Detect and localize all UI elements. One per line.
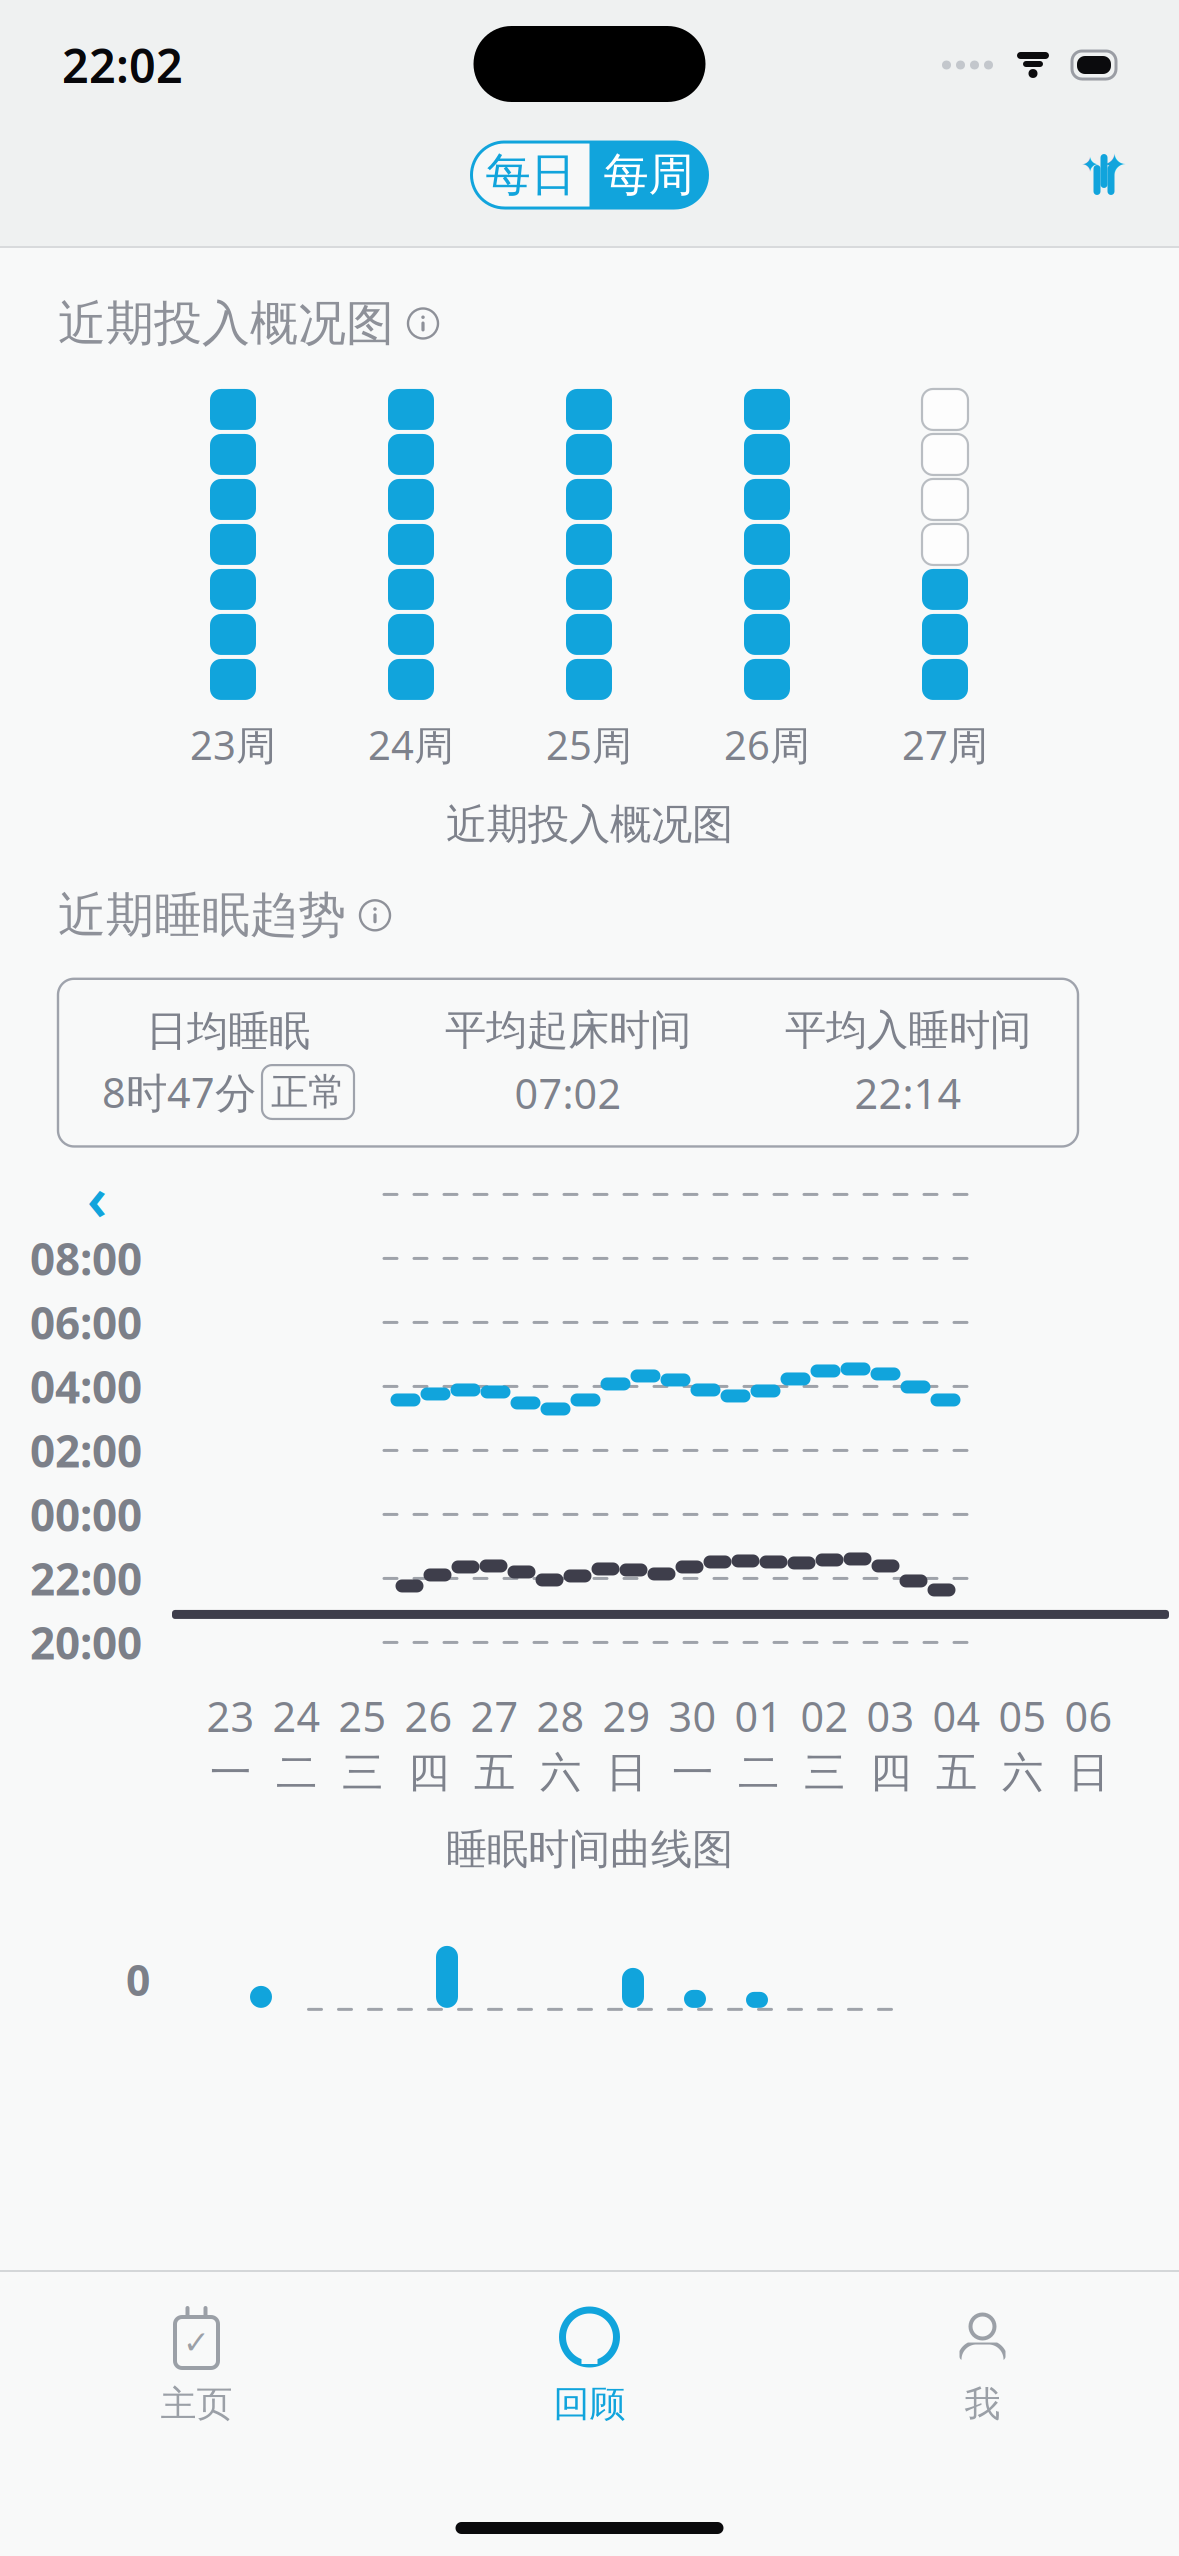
staticText: 8时47分 (102, 1065, 256, 1119)
staticText: 01 (734, 1688, 782, 1743)
staticText: 20:00 (30, 1613, 142, 1672)
staticText: 近期睡眠趋势 (58, 886, 346, 945)
staticText: 05 (998, 1688, 1046, 1743)
staticText: ✓ (183, 2324, 210, 2361)
button[interactable]: Info (408, 308, 438, 338)
staticText: 25周 (546, 718, 632, 771)
staticText: ‹ (87, 1158, 107, 1236)
staticText: 每日 (485, 147, 575, 203)
staticText: 平均起床时间 (445, 1005, 691, 1056)
button[interactable]: 回顾 (393, 2290, 786, 2440)
staticText: 一 (210, 1747, 251, 1798)
staticText: 04:00 (30, 1357, 142, 1416)
staticText: 二 (276, 1747, 317, 1798)
staticText: 四 (408, 1747, 449, 1798)
staticText: 日 (606, 1747, 647, 1798)
staticText: 23 (206, 1688, 254, 1743)
staticText: 我 (964, 2382, 1000, 2426)
staticText: 26 (404, 1688, 452, 1743)
staticText: 0 (126, 1951, 150, 2008)
staticText: 25 (338, 1688, 386, 1743)
staticText: 主页 (160, 2382, 232, 2426)
staticText: 02:00 (30, 1421, 142, 1480)
staticText: 22:14 (854, 1066, 961, 1120)
button[interactable]: ✓ (0, 2290, 393, 2440)
staticText: 26周 (724, 718, 810, 771)
staticText: 五 (474, 1747, 515, 1798)
staticText: 每周 (603, 147, 693, 203)
staticText: 22:02 (62, 34, 183, 96)
staticText: 06 (1064, 1688, 1112, 1743)
button[interactable]: 每周 (589, 142, 707, 208)
staticText: 正常 (271, 1069, 345, 1115)
staticText: 30 (668, 1688, 716, 1743)
staticText: 27周 (902, 718, 988, 771)
staticText: 近期投入概况图 (446, 799, 733, 850)
button[interactable]: 我 (786, 2290, 1179, 2440)
staticText: 一 (672, 1747, 713, 1798)
staticText: 27 (470, 1688, 518, 1743)
staticText: 24 (272, 1688, 320, 1743)
staticText: ✦ (1102, 148, 1127, 181)
staticText: 02 (800, 1688, 848, 1743)
staticText: 06:00 (30, 1293, 142, 1352)
staticText: 六 (540, 1747, 581, 1798)
staticText: 三 (342, 1747, 383, 1798)
staticText: 二 (738, 1747, 779, 1798)
staticText: 03 (866, 1688, 914, 1743)
staticText: ✦ (1081, 152, 1099, 177)
staticText: 四 (870, 1747, 911, 1798)
staticText: 六 (1002, 1747, 1043, 1798)
staticText: 回顾 (553, 2382, 625, 2426)
staticText: 28 (536, 1688, 584, 1743)
staticText: 近期投入概况图 (58, 294, 394, 353)
staticText: 22:00 (30, 1549, 142, 1608)
button[interactable]: Info (360, 900, 390, 930)
button[interactable]: Insights (1077, 148, 1179, 202)
staticText: 00:00 (30, 1485, 142, 1544)
button[interactable]: 每日 (471, 142, 589, 208)
staticText: 24周 (368, 718, 454, 771)
staticText: 睡眠时间曲线图 (446, 1824, 733, 1875)
staticText: 三 (804, 1747, 845, 1798)
staticText: 04 (932, 1688, 980, 1743)
button[interactable]: Previous (52, 1168, 142, 1226)
staticText: 日 (1068, 1747, 1109, 1798)
staticText: 五 (936, 1747, 977, 1798)
staticText: 日均睡眠 (146, 1006, 310, 1057)
staticText: 07:02 (514, 1066, 621, 1120)
staticText: 29 (602, 1688, 650, 1743)
staticText: 平均入睡时间 (785, 1005, 1031, 1056)
staticText: 08:00 (30, 1229, 142, 1288)
staticText: 23周 (190, 718, 276, 771)
